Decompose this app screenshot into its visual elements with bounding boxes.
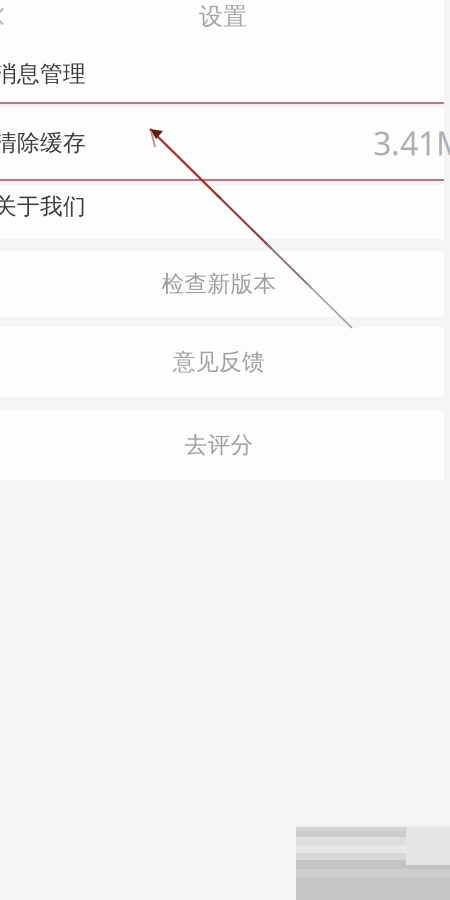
button[interactable]: 清除缓存 [0, 108, 444, 178]
staticText: 检查新版本 [161, 270, 276, 298]
staticText: 清除缓存 [0, 129, 86, 157]
button[interactable]: 检查新版本 [0, 251, 444, 317]
staticText: 设置 [199, 2, 247, 31]
staticText: 关于我们 [0, 193, 86, 220]
button[interactable]: 意见反馈 [0, 327, 444, 397]
button[interactable]: 去评分 [0, 410, 444, 480]
button[interactable]: 返回 [0, 0, 14, 33]
button[interactable]: 消息管理 [0, 47, 444, 101]
button[interactable]: 关于我们 [0, 185, 444, 228]
staticText: 3.41M [373, 122, 450, 164]
staticText: 消息管理 [0, 60, 86, 88]
staticText: 意见反馈 [173, 348, 265, 376]
staticText: 去评分 [184, 431, 253, 459]
